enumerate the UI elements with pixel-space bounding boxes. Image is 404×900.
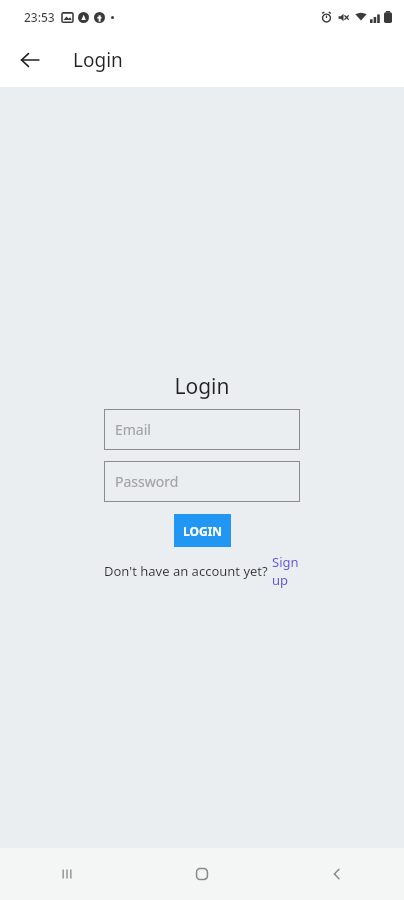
button[interactable]: Back (269, 848, 404, 900)
button[interactable]: Password (104, 461, 300, 502)
button[interactable]: LOGIN (174, 514, 231, 547)
button[interactable]: Back (8, 38, 52, 82)
staticText: 23:53 (24, 9, 55, 25)
button[interactable]: Sign up (272, 553, 300, 589)
staticText: Don't have an account yet? (104, 562, 272, 580)
staticText: Password (115, 472, 179, 491)
staticText: LOGIN (183, 523, 223, 539)
staticText: Email (115, 420, 151, 439)
button[interactable]: Home (134, 848, 269, 900)
button[interactable]: Recent apps (0, 848, 134, 900)
staticText: Login (73, 47, 123, 73)
button[interactable]: Email (104, 409, 300, 450)
staticText: Login (174, 372, 230, 401)
